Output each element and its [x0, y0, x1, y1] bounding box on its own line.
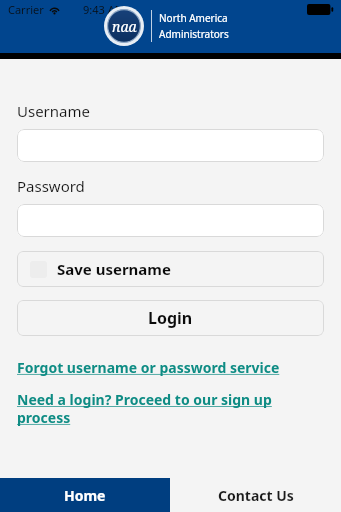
button[interactable]: Save username [17, 251, 324, 287]
staticText: Administrators [159, 27, 229, 41]
button[interactable]: Contact Us [170, 478, 341, 512]
button[interactable]: Text input [17, 129, 324, 162]
staticText: North America [159, 11, 228, 25]
button[interactable]: Home [0, 478, 170, 512]
button[interactable]: Forgot username or password service [17, 358, 324, 377]
staticText: Password [17, 176, 85, 196]
staticText: Login [148, 307, 193, 329]
staticText: Forgot username or password service [17, 358, 280, 377]
staticText: Need a login? Proceed to our sign up pro… [17, 390, 324, 427]
staticText: Carrier [8, 2, 44, 17]
staticText: Home [64, 486, 106, 505]
staticText: Contact Us [218, 486, 294, 505]
button[interactable]: Need a login? Proceed to our sign up pro… [17, 390, 324, 427]
button[interactable]: Login [17, 300, 324, 336]
staticText: 9:43 AM [83, 2, 125, 17]
staticText: naa [112, 17, 137, 36]
staticText: Save username [57, 259, 171, 279]
staticText: Username [17, 101, 90, 121]
button[interactable]: Text input [17, 204, 324, 237]
